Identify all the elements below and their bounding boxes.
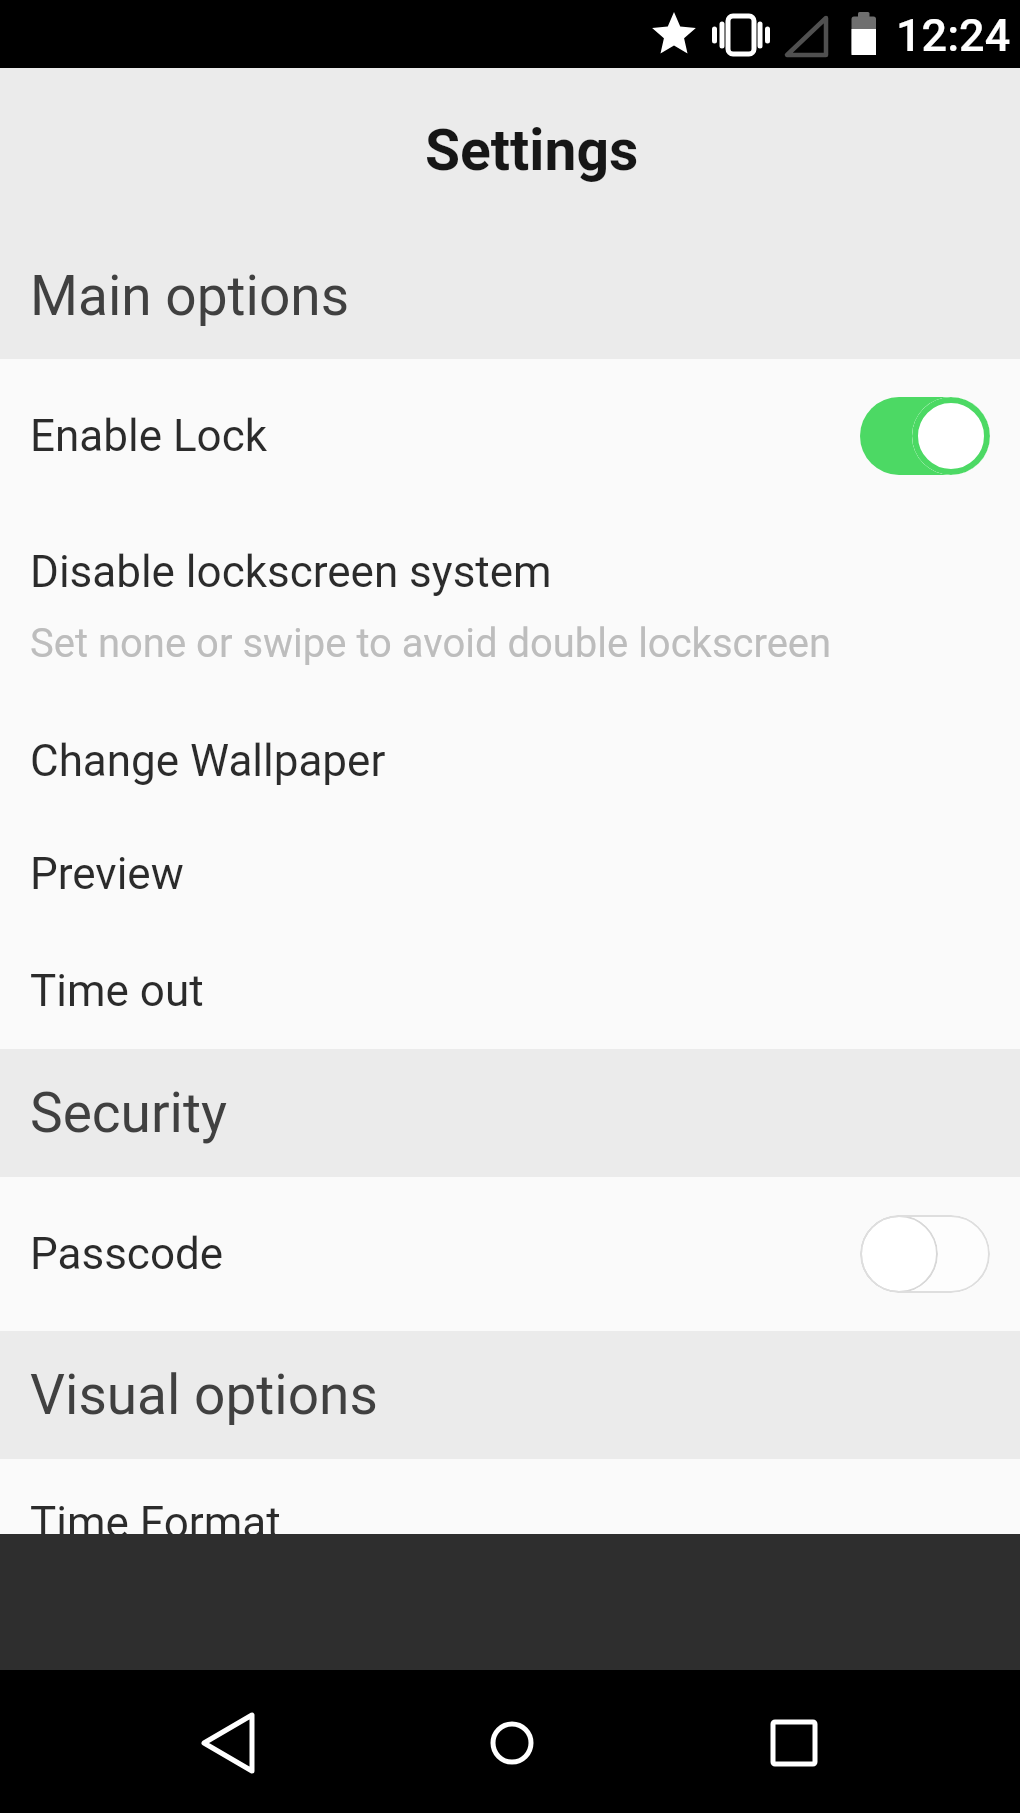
button[interactable]: Enable Lock <box>0 359 1020 513</box>
staticText: Time out <box>30 965 204 1017</box>
staticText: Time Format <box>30 1497 281 1534</box>
button[interactable] <box>860 1215 990 1293</box>
staticText: Main options <box>30 264 350 328</box>
button[interactable] <box>860 397 990 475</box>
staticText: Visual options <box>30 1363 378 1427</box>
button[interactable] <box>190 1705 266 1781</box>
staticText: Disable lockscreen system <box>30 546 552 598</box>
staticText: Passcode <box>30 1228 224 1280</box>
staticText: 12:24 <box>896 9 1011 62</box>
button[interactable]: Time out <box>0 932 1020 1049</box>
button[interactable] <box>756 1705 832 1781</box>
button[interactable]: Time Format <box>0 1459 1020 1534</box>
staticText: Settings <box>425 117 639 184</box>
staticText: Set none or swipe to avoid double locksc… <box>30 620 832 667</box>
button[interactable]: Change Wallpaper <box>0 705 1020 816</box>
staticText: Enable Lock <box>30 410 268 462</box>
staticText: Preview <box>30 848 184 900</box>
button[interactable]: Passcode <box>0 1177 1020 1331</box>
staticText: Security <box>30 1081 227 1145</box>
staticText: Change Wallpaper <box>30 735 386 787</box>
button[interactable]: Preview <box>0 816 1020 932</box>
button[interactable] <box>474 1705 550 1781</box>
button[interactable]: Disable lockscreen system <box>0 513 1020 705</box>
